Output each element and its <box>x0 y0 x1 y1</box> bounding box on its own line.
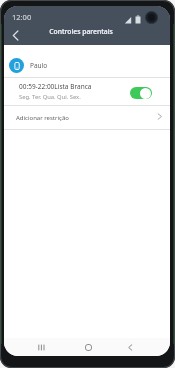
button[interactable] <box>123 340 137 354</box>
staticText: 12:00 <box>12 12 32 22</box>
staticText: Controles parentais <box>4 27 164 36</box>
button[interactable] <box>34 340 48 354</box>
button[interactable]: 00:59-22:00Lista Branca <box>4 78 170 105</box>
button[interactable] <box>130 87 152 99</box>
staticText: Paulo <box>30 61 48 70</box>
button[interactable] <box>6 26 24 44</box>
staticText: Adicionar restrição <box>16 114 156 122</box>
button[interactable] <box>81 340 95 354</box>
button[interactable]: Adicionar restrição <box>4 106 170 129</box>
staticText: Seg. Ter. Qua. Qui. Sex. <box>19 93 81 101</box>
button[interactable]: Paulo <box>4 45 170 77</box>
staticText: 00:59-22:00Lista Branca <box>19 82 92 91</box>
